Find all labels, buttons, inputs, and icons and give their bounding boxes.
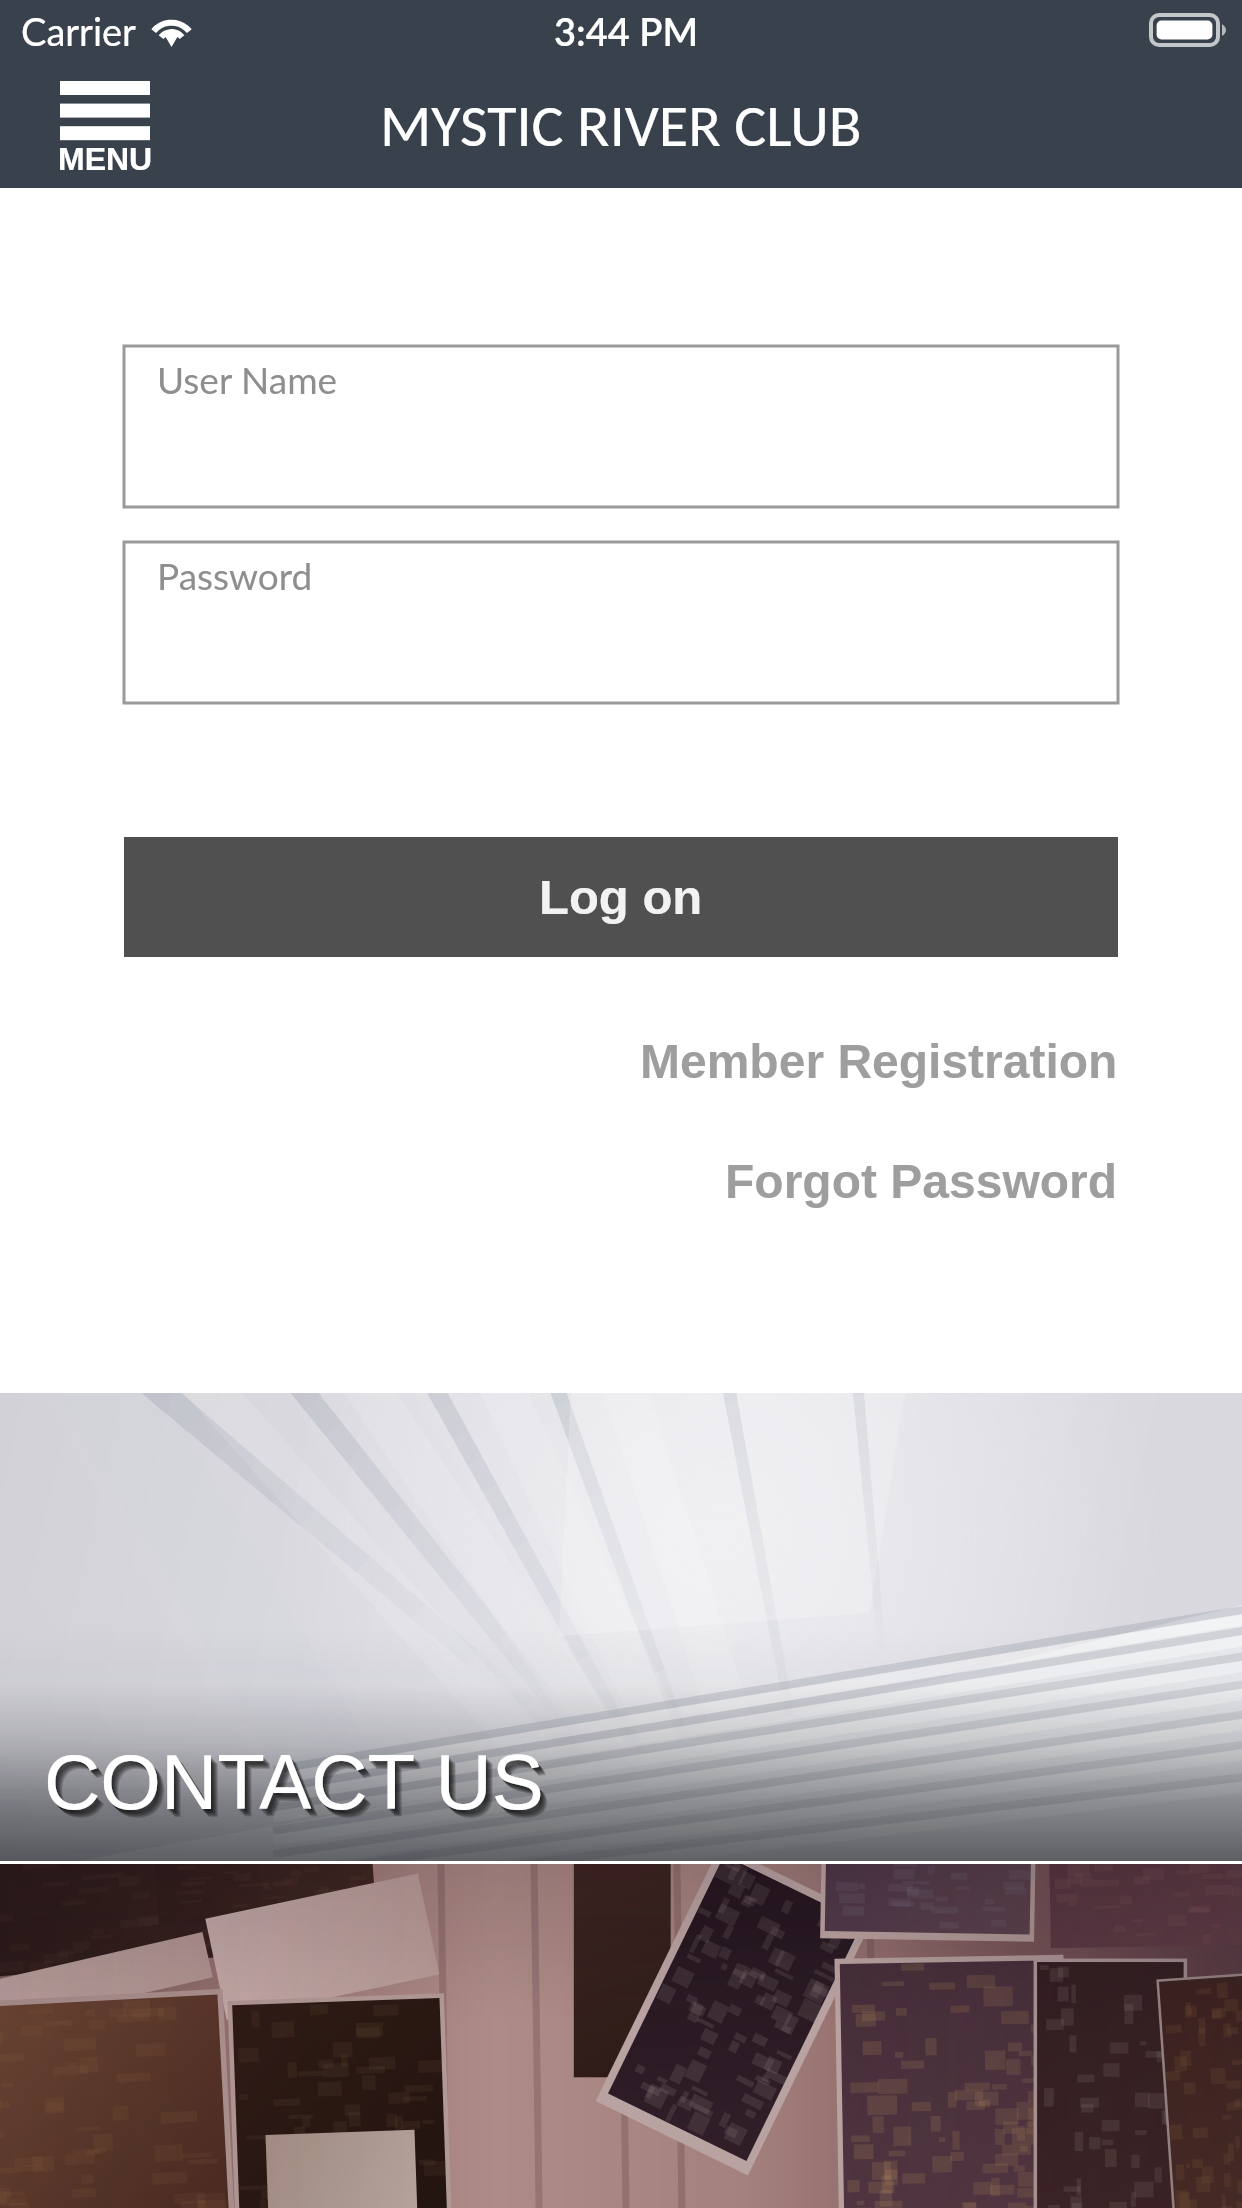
staticText: User Name <box>157 357 338 401</box>
staticText: CONTACT US <box>48 1743 548 1830</box>
staticText: Log on <box>539 870 703 925</box>
staticText: CONTACT US <box>49 1744 549 1831</box>
staticText: Password <box>157 553 313 597</box>
staticText: CONTACT US <box>44 1738 544 1825</box>
button[interactable]: Forgot Password <box>124 1155 1118 1209</box>
staticText: Carrier <box>21 8 136 54</box>
staticText: Forgot Password <box>725 1155 1118 1209</box>
staticText: 3:44 PM <box>554 8 699 54</box>
staticText: CONTACT US <box>51 1746 551 1833</box>
staticText: CONTACT US <box>47 1742 547 1829</box>
staticText: MENU <box>58 141 153 177</box>
staticText: CONTACT US <box>46 1741 546 1828</box>
staticText: CONTACT US <box>50 1745 550 1832</box>
button[interactable]: Menu <box>57 59 153 169</box>
button[interactable]: Log on <box>124 837 1118 957</box>
staticText: CONTACT US <box>45 1740 545 1827</box>
staticText: MYSTIC RIVER CLUB <box>380 89 862 162</box>
button[interactable]: User Name <box>124 346 1118 507</box>
button[interactable]: Password <box>124 542 1118 703</box>
staticText: Member Registration <box>640 1035 1118 1089</box>
button[interactable]: Member Registration <box>124 1035 1118 1089</box>
